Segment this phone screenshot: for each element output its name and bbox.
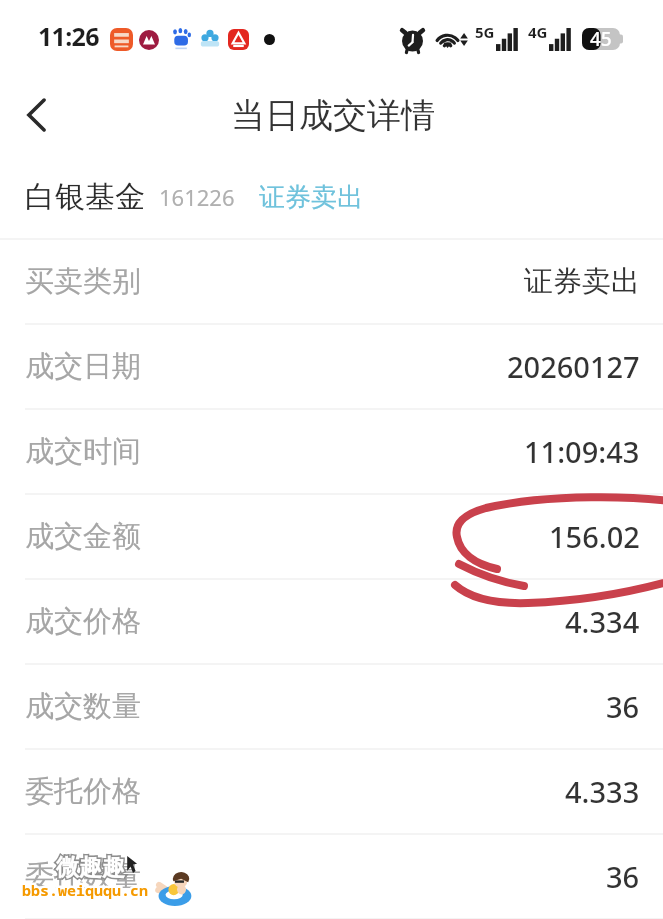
staticText: 156.02 [549, 517, 640, 556]
staticText: 成交价格 [25, 603, 141, 640]
staticText: 161226 [159, 182, 235, 212]
staticText: 当日成交详情 [231, 94, 435, 137]
staticText: 45 [590, 26, 612, 52]
staticText: 微趣趣 [56, 853, 125, 882]
staticText: 4G [528, 22, 548, 42]
staticText: 证券卖出 [524, 263, 640, 300]
staticText: 5G [475, 22, 495, 42]
button[interactable]: 成交日期 [0, 325, 663, 408]
staticText: 买卖类别 [25, 263, 141, 300]
staticText: 委托价格 [25, 773, 141, 810]
staticText: 成交数量 [25, 688, 141, 725]
staticText: bbs.weiququ.cn [22, 880, 149, 900]
button[interactable]: 成交价格 [0, 580, 663, 663]
staticText: 11:09:43 [524, 432, 640, 471]
staticText: 20260127 [507, 347, 640, 386]
staticText: 白银基金 [25, 178, 145, 216]
button[interactable]: 成交数量 [0, 665, 663, 748]
staticText: 委托数量 [25, 858, 141, 895]
staticText: 36 [606, 687, 640, 726]
button[interactable]: 买卖类别 [0, 240, 663, 323]
staticText: 成交金额 [25, 518, 141, 555]
staticText: 微趣趣 [56, 853, 125, 882]
staticText: 成交时间 [25, 433, 141, 470]
button[interactable]: 成交时间 [0, 410, 663, 493]
button[interactable]: 成交金额 [0, 495, 663, 578]
button[interactable]: 委托数量 [0, 835, 663, 918]
staticText: 证券卖出 [259, 181, 363, 214]
staticText: bbs.weiququ.cn [22, 880, 149, 900]
staticText: 36 [606, 857, 640, 896]
staticText: 11:26 [38, 19, 99, 53]
staticText: 4.334 [565, 602, 640, 641]
button[interactable]: Back [0, 78, 72, 156]
staticText: 4.333 [565, 772, 640, 811]
staticText: 成交日期 [25, 348, 141, 385]
button[interactable]: 委托价格 [0, 750, 663, 833]
